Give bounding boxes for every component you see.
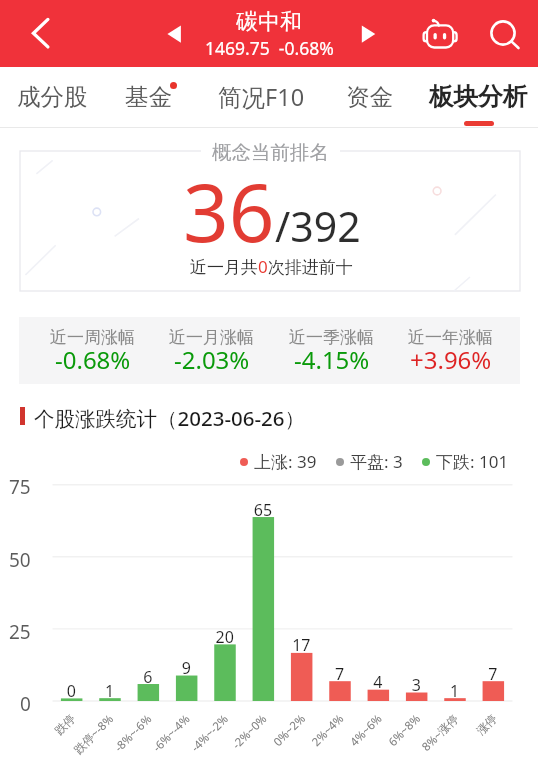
staticText: 基金 bbox=[125, 82, 172, 112]
staticText: /392 bbox=[275, 198, 361, 254]
button[interactable]: 简况F10 bbox=[218, 67, 305, 128]
button[interactable]: Previous sector bbox=[156, 16, 192, 52]
staticText: 简况F10 bbox=[218, 81, 305, 113]
staticText: 碳中和 bbox=[236, 8, 302, 36]
staticText: 平盘: 3 bbox=[350, 450, 403, 473]
staticText: -0.68% bbox=[55, 343, 131, 376]
staticText: 概念当前排名 bbox=[212, 140, 329, 165]
button[interactable]: AI assistant bbox=[418, 12, 458, 52]
staticText: 36 bbox=[183, 156, 275, 265]
button[interactable]: 上涨: 39 bbox=[240, 450, 317, 473]
staticText: 下跌: 101 bbox=[436, 450, 509, 473]
staticText: 上涨: 39 bbox=[254, 450, 317, 473]
button[interactable]: 基金 bbox=[125, 67, 172, 128]
staticText: 成分股 bbox=[17, 82, 88, 112]
button[interactable]: Next sector bbox=[350, 16, 386, 52]
staticText: 资金 bbox=[346, 82, 393, 112]
staticText: 1469.75 -0.68% bbox=[205, 36, 334, 60]
button[interactable]: 平盘: 3 bbox=[336, 450, 403, 473]
staticText: 近一季涨幅 bbox=[289, 327, 374, 348]
button[interactable]: 板块分析 bbox=[429, 67, 527, 128]
button[interactable]: Back bbox=[0, 0, 66, 67]
button[interactable]: 资金 bbox=[346, 67, 393, 128]
staticText: 近一月共0次排进前十 bbox=[190, 255, 353, 278]
staticText: -2.03% bbox=[174, 343, 250, 376]
button[interactable]: Search bbox=[483, 12, 527, 56]
staticText: 板块分析 bbox=[429, 81, 527, 112]
button[interactable]: 成分股 bbox=[17, 67, 88, 128]
staticText: 个股涨跌统计（2023-06-26） bbox=[34, 404, 305, 432]
staticText: 近一年涨幅 bbox=[408, 327, 493, 348]
staticText: +3.96% bbox=[410, 343, 492, 376]
staticText: -4.15% bbox=[294, 343, 370, 376]
staticText: 近一月涨幅 bbox=[169, 327, 254, 348]
button[interactable]: 下跌: 101 bbox=[422, 450, 509, 473]
staticText: 近一周涨幅 bbox=[50, 327, 135, 348]
